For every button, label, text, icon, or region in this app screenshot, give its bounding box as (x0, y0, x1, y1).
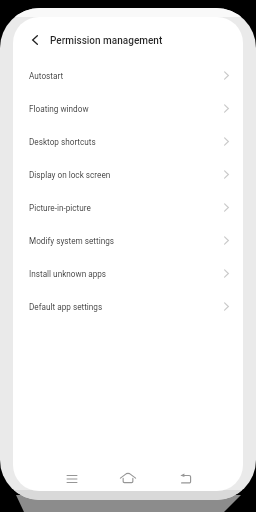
button[interactable]: Desktop shortcuts (13, 125, 243, 158)
button[interactable]: Modify system settings (13, 224, 243, 257)
button[interactable]: Home (115, 465, 141, 491)
button[interactable]: Install unknown apps (13, 257, 243, 290)
staticText: Autostart (29, 71, 64, 81)
button[interactable]: Back (23, 28, 47, 52)
staticText: Picture-in-picture (29, 203, 91, 213)
button[interactable]: Autostart (13, 59, 243, 92)
staticText: Modify system settings (29, 236, 114, 246)
button[interactable]: Picture-in-picture (13, 191, 243, 224)
button[interactable]: Display on lock screen (13, 158, 243, 191)
button[interactable]: Floating window (13, 92, 243, 125)
staticText: Desktop shortcuts (29, 137, 96, 147)
staticText: Display on lock screen (29, 170, 111, 180)
staticText: Default app settings (29, 302, 103, 312)
staticText: Permission management (50, 35, 163, 47)
staticText: Floating window (29, 104, 89, 114)
button[interactable]: Default app settings (13, 290, 243, 323)
staticText: Install unknown apps (29, 269, 107, 279)
button[interactable]: Recent apps (59, 466, 85, 491)
button[interactable]: Back (173, 466, 199, 491)
